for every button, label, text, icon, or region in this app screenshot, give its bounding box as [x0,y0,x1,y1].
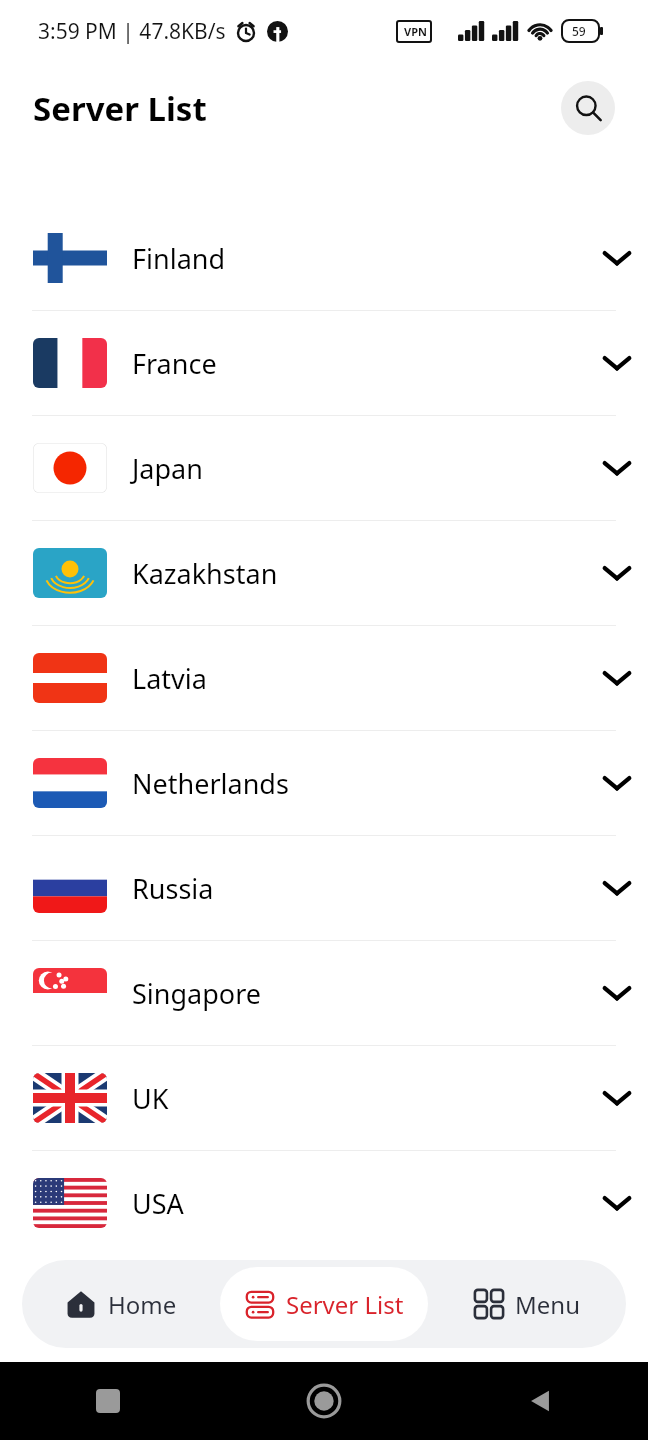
button[interactable]: Expand USA [586,1172,648,1234]
staticText: Server List [286,1288,404,1321]
staticText: Singapore [132,975,262,1012]
button[interactable]: Search [561,81,615,135]
button[interactable]: Russia [0,836,648,940]
staticText: Japan [132,450,203,487]
button[interactable]: France [0,311,648,415]
button[interactable]: Back [432,1362,648,1440]
staticText: UK [132,1080,169,1117]
button[interactable]: Menu [428,1260,626,1348]
button[interactable]: UK [0,1046,648,1150]
button[interactable]: Server List [220,1267,428,1341]
button[interactable]: Expand Singapore [586,962,648,1024]
button[interactable]: Expand Japan [586,437,648,499]
button[interactable]: Expand Latvia [586,647,648,709]
button[interactable]: Expand Kazakhstan [586,542,648,604]
staticText: France [132,345,217,382]
button[interactable]: Japan [0,416,648,520]
button[interactable]: Home [216,1362,432,1440]
staticText: 59 [572,23,586,39]
button[interactable]: Kazakhstan [0,521,648,625]
staticText: Latvia [132,660,207,697]
staticText: Home [108,1288,177,1321]
button[interactable]: Netherlands [0,731,648,835]
staticText: USA [132,1185,184,1222]
staticText: VPN [404,24,427,39]
button[interactable]: Expand Finland [586,227,648,289]
button[interactable]: Singapore [0,941,648,1045]
staticText: Russia [132,870,214,907]
button[interactable]: USA [0,1151,648,1255]
staticText: Menu [515,1288,580,1321]
button[interactable]: Recents [0,1362,216,1440]
button[interactable]: Expand UK [586,1067,648,1129]
button[interactable]: Home [22,1260,220,1348]
staticText: Server List [33,86,207,131]
button[interactable]: Finland [0,206,648,310]
staticText: Kazakhstan [132,555,278,592]
button[interactable]: Expand France [586,332,648,394]
button[interactable]: Expand Russia [586,857,648,919]
staticText: Netherlands [132,765,289,802]
button[interactable]: Expand Netherlands [586,752,648,814]
button[interactable]: Latvia [0,626,648,730]
staticText: 3:59 PM | 47.8KB/s [38,17,226,46]
staticText: Finland [132,240,226,277]
